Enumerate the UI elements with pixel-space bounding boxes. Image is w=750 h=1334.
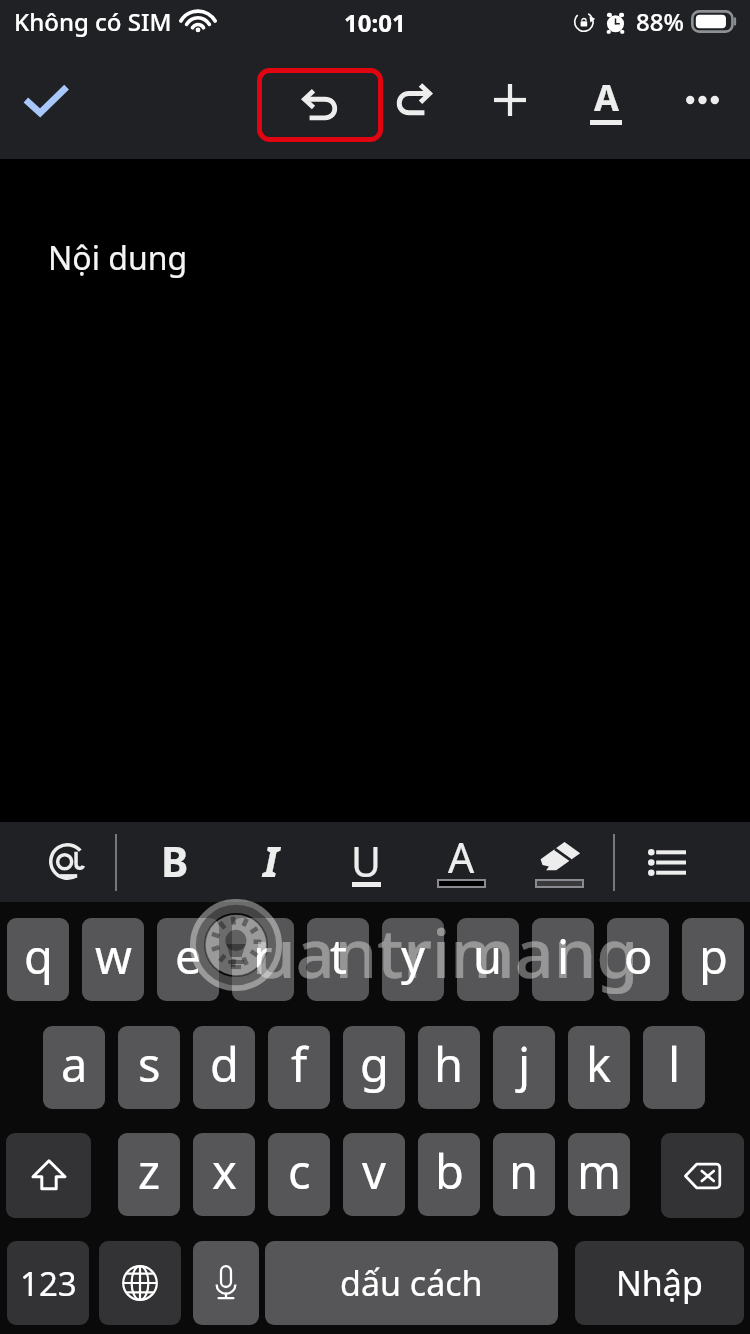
- staticText: uantrimang: [253, 905, 639, 998]
- button[interactable]: o: [607, 918, 669, 1001]
- staticText: q: [24, 924, 53, 988]
- staticText: A: [448, 829, 475, 885]
- other: Done: [25, 86, 67, 114]
- staticText: r: [253, 924, 273, 988]
- button[interactable]: Undo: [257, 68, 383, 142]
- button[interactable]: Nhập: [575, 1241, 744, 1325]
- button[interactable]: t: [307, 918, 369, 1001]
- staticText: z: [138, 1139, 161, 1203]
- staticText: c: [288, 1139, 311, 1203]
- other: Insert: [493, 83, 527, 117]
- staticText: u: [473, 924, 503, 988]
- other: Redo: [396, 83, 432, 115]
- button[interactable]: z: [118, 1133, 180, 1216]
- staticText: d: [210, 1032, 239, 1096]
- button[interactable]: w: [82, 918, 144, 1001]
- staticText: y: [401, 924, 425, 988]
- staticText: i: [557, 924, 570, 988]
- staticText: h: [434, 1032, 464, 1096]
- staticText: v: [362, 1139, 386, 1203]
- other: Highlight: [533, 832, 585, 888]
- button[interactable]: i: [532, 918, 594, 1001]
- button[interactable]: Bulleted list: [635, 822, 699, 902]
- button[interactable]: x: [193, 1133, 255, 1216]
- staticText: p: [699, 924, 728, 988]
- staticText: x: [212, 1139, 237, 1203]
- staticText: a: [61, 1032, 88, 1096]
- button[interactable]: n: [493, 1133, 555, 1216]
- other: Mention: [49, 843, 86, 880]
- button[interactable]: a: [43, 1026, 105, 1109]
- staticText: 10:01: [344, 6, 406, 39]
- button[interactable]: j: [493, 1026, 555, 1109]
- button[interactable]: Insert: [477, 65, 543, 135]
- button[interactable]: Change keyboard: [99, 1241, 181, 1325]
- button[interactable]: c: [268, 1133, 330, 1216]
- button[interactable]: k: [568, 1026, 630, 1109]
- button[interactable]: Mention: [27, 822, 107, 902]
- other: Undo: [302, 89, 338, 120]
- staticText: Nội dung: [48, 236, 188, 280]
- button[interactable]: Voice input: [193, 1241, 259, 1325]
- button[interactable]: l: [643, 1026, 705, 1109]
- button[interactable]: q: [7, 918, 69, 1001]
- staticText: t: [330, 924, 347, 988]
- staticText: n: [509, 1139, 539, 1203]
- staticText: m: [577, 1139, 621, 1203]
- button[interactable]: Redo: [381, 65, 447, 135]
- staticText: f: [291, 1032, 308, 1096]
- button[interactable]: Highlight: [527, 822, 591, 902]
- staticText: l: [668, 1032, 681, 1096]
- button[interactable]: m: [568, 1133, 630, 1216]
- button[interactable]: y: [382, 918, 444, 1001]
- button[interactable]: p: [682, 918, 744, 1001]
- staticText: s: [138, 1032, 161, 1096]
- button[interactable]: Shift: [6, 1133, 91, 1218]
- button[interactable]: More options: [669, 65, 735, 135]
- button[interactable]: Text formatting: [573, 65, 639, 135]
- button[interactable]: A: [429, 822, 493, 902]
- staticText: j: [518, 1032, 531, 1096]
- button[interactable]: v: [343, 1133, 405, 1216]
- staticText: Không có SIM: [14, 5, 172, 38]
- staticText: I: [263, 833, 279, 889]
- other: More options: [686, 95, 719, 105]
- staticText: b: [435, 1139, 464, 1203]
- staticText: 88%: [636, 5, 684, 38]
- staticText: U: [351, 833, 381, 887]
- staticText: A: [594, 73, 619, 119]
- staticText: o: [624, 924, 653, 988]
- button[interactable]: h: [418, 1026, 480, 1109]
- other: Text formatting: [586, 79, 626, 125]
- staticText: Nhập: [616, 1260, 703, 1306]
- staticText: e: [175, 924, 202, 988]
- button[interactable]: I: [239, 822, 303, 902]
- button[interactable]: 123: [7, 1241, 89, 1325]
- staticText: 123: [20, 1261, 77, 1306]
- button[interactable]: e: [157, 918, 219, 1001]
- button[interactable]: Backspace: [661, 1133, 744, 1218]
- staticText: dấu cách: [340, 1260, 483, 1306]
- staticText: w: [95, 924, 132, 988]
- button[interactable]: U: [334, 822, 398, 902]
- button[interactable]: d: [193, 1026, 255, 1109]
- button[interactable]: u: [457, 918, 519, 1001]
- button[interactable]: Done: [10, 65, 82, 135]
- staticText: B: [161, 833, 189, 889]
- button[interactable]: g: [343, 1026, 405, 1109]
- staticText: k: [586, 1032, 612, 1096]
- other: Bulleted list: [648, 849, 686, 876]
- button[interactable]: f: [268, 1026, 330, 1109]
- button[interactable]: s: [118, 1026, 180, 1109]
- button[interactable]: r: [232, 918, 294, 1001]
- staticText: g: [360, 1032, 389, 1096]
- button[interactable]: B: [143, 822, 207, 902]
- button[interactable]: dấu cách: [265, 1241, 558, 1325]
- button[interactable]: b: [418, 1133, 480, 1216]
